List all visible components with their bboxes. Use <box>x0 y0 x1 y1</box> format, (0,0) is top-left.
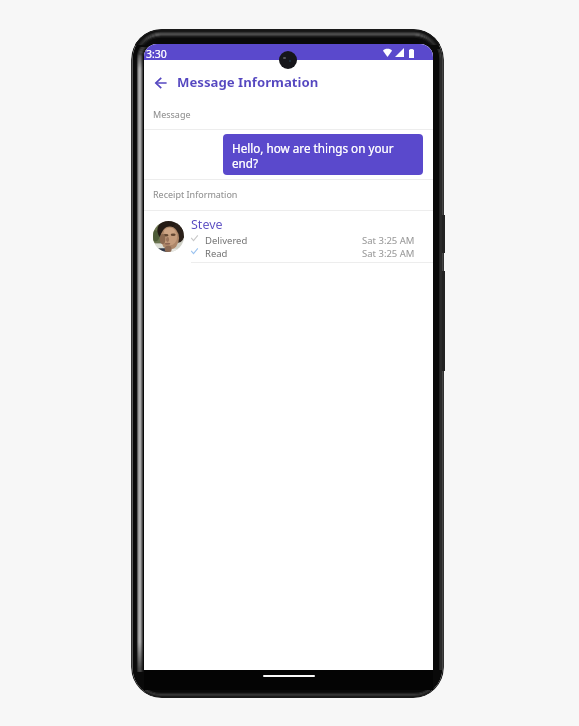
staticText: Delivered <box>205 234 248 247</box>
button[interactable]: Hello, how are things on your end? <box>223 134 423 175</box>
staticText: Message Information <box>177 73 319 91</box>
staticText: Sat 3:25 AM <box>362 234 415 247</box>
staticText: Receipt Information <box>153 188 238 200</box>
button[interactable]: Back <box>146 67 176 99</box>
button[interactable]: Steve <box>144 211 433 262</box>
staticText: 3:30 <box>146 47 167 61</box>
staticText: Hello, how are things on your end? <box>232 140 414 172</box>
staticText: Sat 3:25 AM <box>362 247 415 260</box>
staticText: Read <box>205 247 228 260</box>
staticText: Steve <box>191 216 223 233</box>
staticText: Message <box>153 108 191 120</box>
